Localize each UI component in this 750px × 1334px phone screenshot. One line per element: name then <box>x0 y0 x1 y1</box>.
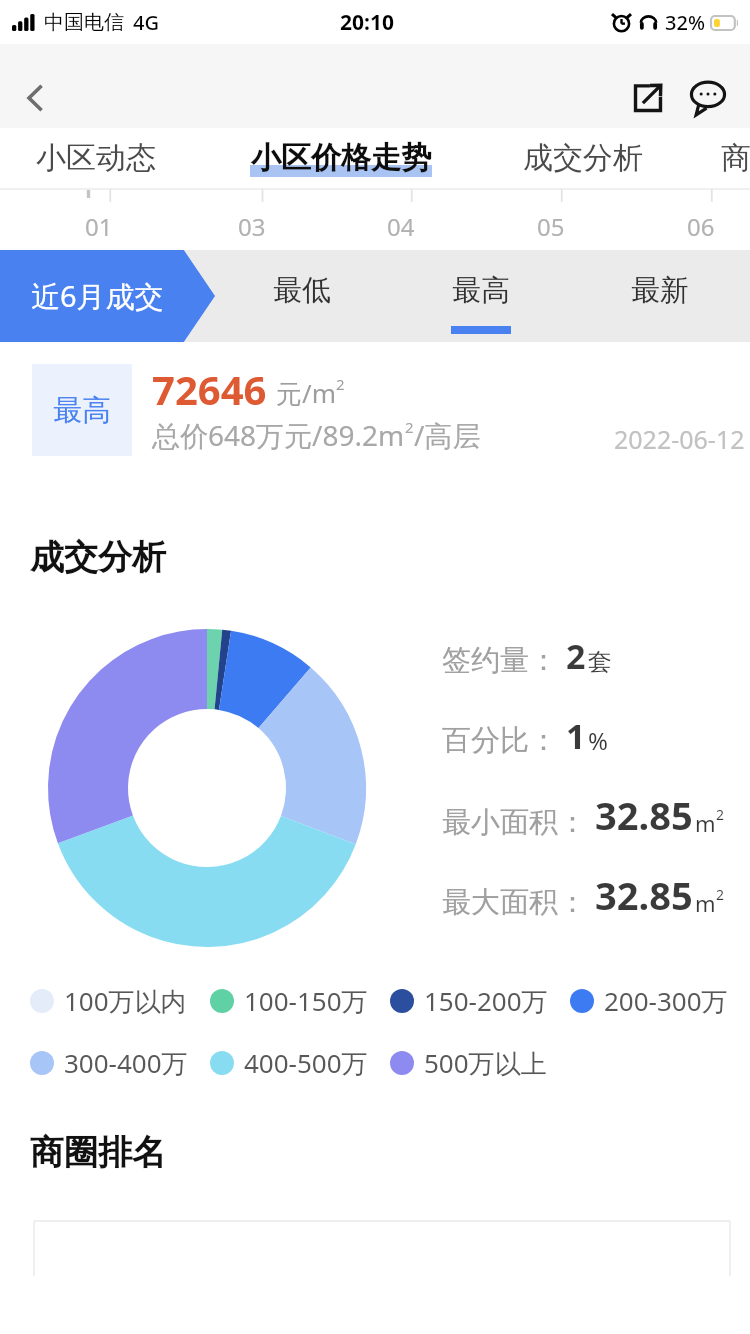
staticText: 最大面积： <box>442 884 587 921</box>
button[interactable]: 200-300万 <box>570 981 750 1021</box>
staticText: 商 <box>721 139 750 177</box>
staticText: 300-400万 <box>64 1045 188 1081</box>
staticText: 1 <box>566 713 586 759</box>
button[interactable]: 最高 <box>406 250 556 342</box>
staticText: 最高 <box>452 272 510 309</box>
button[interactable]: 300-400万 <box>30 1043 210 1083</box>
staticText: 2 <box>405 417 414 437</box>
staticText: 4G <box>133 9 159 36</box>
button[interactable]: 150-200万 <box>390 981 570 1021</box>
staticText: 2 <box>716 885 725 904</box>
staticText: 32% <box>665 9 705 36</box>
staticText: 小区价格走势 <box>251 139 431 177</box>
staticText: 2 <box>566 633 586 679</box>
button[interactable]: 100-150万 <box>210 981 390 1021</box>
staticText: m <box>695 888 716 918</box>
button[interactable]: 100万以内 <box>30 981 210 1021</box>
button[interactable]: 最低 <box>227 250 377 342</box>
staticText: 最高 <box>53 392 111 429</box>
button[interactable]: Comments <box>680 70 736 126</box>
staticText: 03 <box>238 210 266 243</box>
staticText: 最新 <box>631 272 689 309</box>
staticText: 套 <box>588 647 612 677</box>
staticText: 签约量： <box>442 642 558 679</box>
staticText: 72646 <box>152 362 267 416</box>
staticText: 中国电信 <box>44 10 124 35</box>
button[interactable]: 500万以上 <box>390 1043 570 1083</box>
staticText: 百分比： <box>442 722 558 759</box>
button[interactable]: 最新 <box>585 250 735 342</box>
staticText: 100万以内 <box>64 983 187 1019</box>
staticText: 150-200万 <box>424 983 548 1019</box>
staticText: 05 <box>537 210 565 243</box>
staticText: 小区动态 <box>36 139 156 177</box>
staticText: 04 <box>387 210 415 243</box>
button[interactable]: 商 <box>718 128 750 188</box>
button[interactable]: 近6月成交 <box>0 250 215 342</box>
button[interactable]: Back <box>6 68 66 128</box>
staticText: 32.85 <box>595 869 693 921</box>
button[interactable]: 小区动态 <box>33 128 159 188</box>
staticText: 32.85 <box>595 789 693 841</box>
staticText: 2022-06-12 <box>614 422 745 456</box>
staticText: 20:10 <box>340 8 394 37</box>
button[interactable]: 400-500万 <box>210 1043 390 1083</box>
staticText: 总价648万元/89.2m <box>152 416 405 454</box>
staticText: 06 <box>687 210 715 243</box>
staticText: 2 <box>716 805 725 824</box>
button[interactable]: 成交分析 <box>520 128 646 188</box>
staticText: 成交分析 <box>523 139 643 177</box>
button[interactable]: Share <box>620 70 676 126</box>
staticText: 01 <box>85 210 113 243</box>
staticText: 成交分析 <box>30 536 166 579</box>
staticText: % <box>588 724 608 757</box>
staticText: 近6月成交 <box>31 276 164 316</box>
staticText: /高层 <box>414 416 481 454</box>
staticText: 最小面积： <box>442 804 587 841</box>
staticText: 元/m <box>276 375 336 411</box>
button[interactable]: 小区价格走势 <box>248 128 434 188</box>
button[interactable]: 最高 <box>0 342 750 478</box>
staticText: 100-150万 <box>244 983 368 1019</box>
staticText: 2 <box>336 374 345 394</box>
staticText: 200-300万 <box>604 983 728 1019</box>
staticText: m <box>695 808 716 838</box>
staticText: 500万以上 <box>424 1045 547 1081</box>
staticText: 最低 <box>273 272 331 309</box>
staticText: 400-500万 <box>244 1045 368 1081</box>
staticText: 商圈排名 <box>30 1131 166 1174</box>
